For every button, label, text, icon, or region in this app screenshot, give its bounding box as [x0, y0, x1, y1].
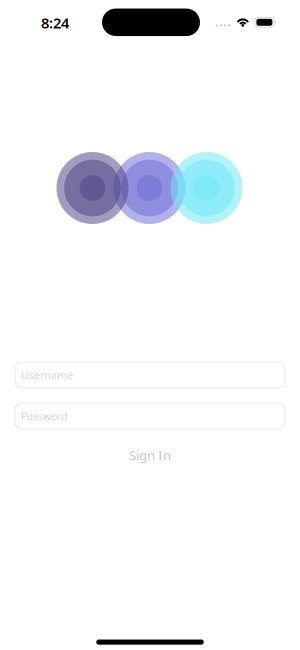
- button[interactable]: Password: [15, 403, 285, 429]
- staticText: Password: [21, 409, 68, 423]
- staticText: Username: [21, 368, 73, 382]
- staticText: 8:24: [41, 13, 69, 33]
- staticText: Sign In: [129, 446, 171, 464]
- button[interactable]: Sign In: [15, 446, 285, 464]
- button[interactable]: Username: [15, 362, 285, 388]
